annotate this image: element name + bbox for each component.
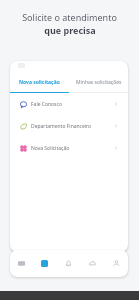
staticText: Solicite o atendimento	[22, 11, 117, 23]
staticText: que precisa	[44, 24, 96, 36]
button[interactable]: Profile	[104, 250, 128, 277]
button[interactable]: Nova solicitação	[10, 75, 69, 93]
staticText: Nova solicitação	[19, 79, 60, 86]
staticText: Nova Solicitação	[31, 145, 70, 152]
staticText: Fale Conosco	[31, 101, 62, 108]
button[interactable]: Fale Conosco	[10, 93, 128, 115]
button[interactable]: Cloud	[80, 250, 104, 277]
button[interactable]: Requests	[33, 250, 56, 277]
button[interactable]: Nova Solicitação	[10, 137, 128, 159]
button[interactable]: Documents	[10, 250, 33, 277]
button[interactable]: Notifications	[56, 250, 80, 277]
button[interactable]: Departamento Financeiro	[10, 115, 128, 137]
staticText: Departamento Financeiro	[31, 123, 92, 130]
button[interactable]: Minhas solicitações	[69, 75, 128, 93]
staticText: Minhas solicitações	[76, 79, 122, 86]
